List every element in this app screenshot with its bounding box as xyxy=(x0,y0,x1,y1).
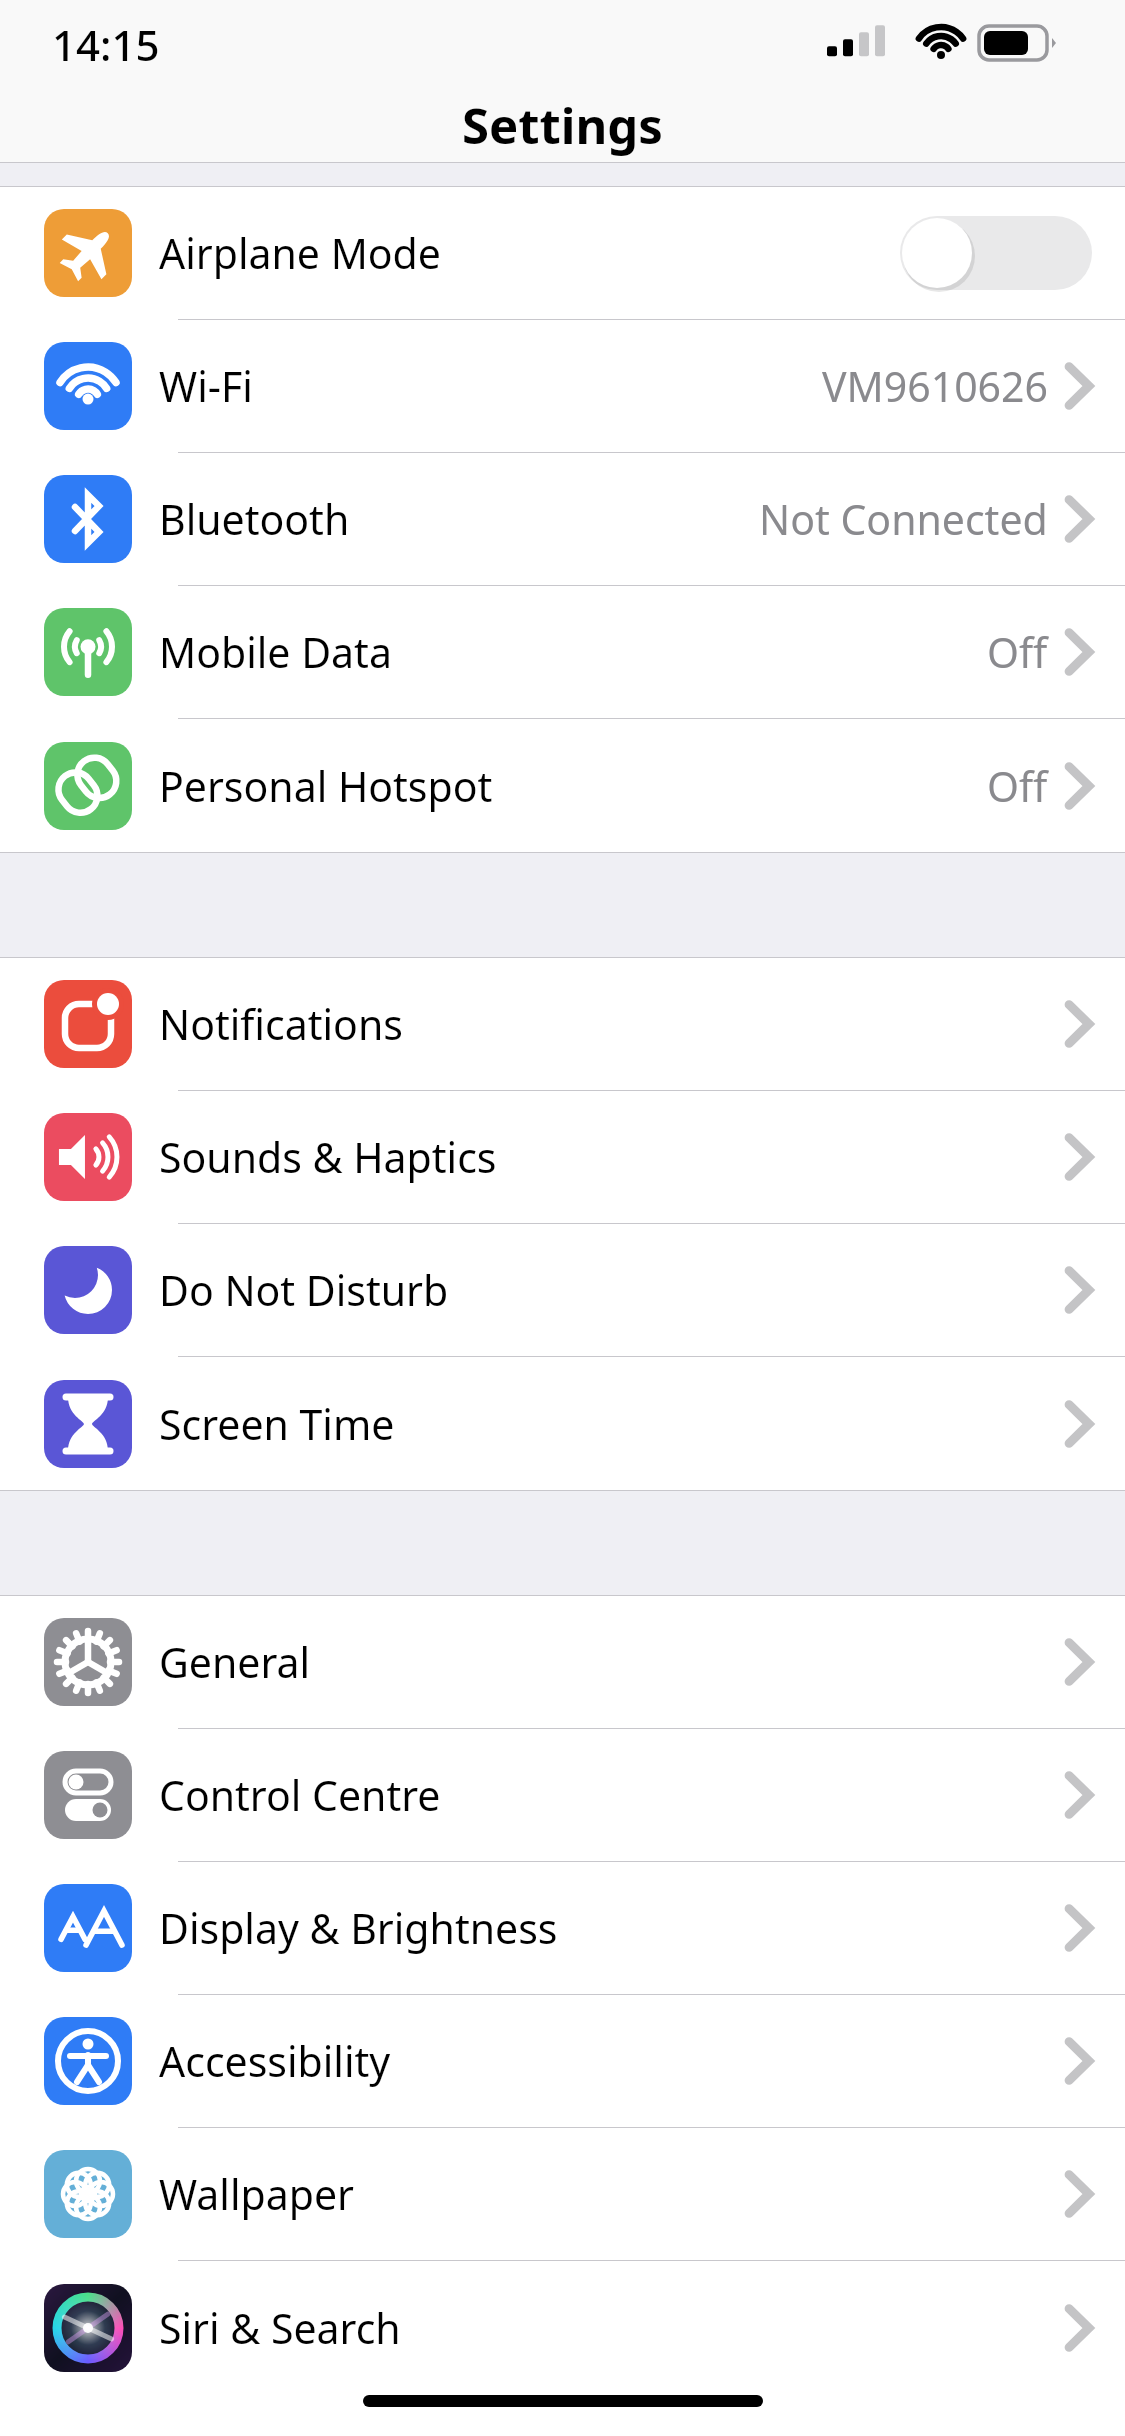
staticText: General xyxy=(159,1634,311,1690)
staticText: Siri & Search xyxy=(159,2300,401,2356)
button[interactable]: Personal Hotspot xyxy=(0,719,1125,852)
staticText: Sounds & Haptics xyxy=(159,1129,497,1185)
button[interactable]: Control Centre xyxy=(0,1729,1125,1862)
button[interactable]: Wi-Fi xyxy=(0,320,1125,453)
staticText: VM9610626 xyxy=(822,358,1048,414)
button[interactable]: Sounds & Haptics xyxy=(0,1091,1125,1224)
button[interactable]: Wallpaper xyxy=(0,2128,1125,2261)
staticText: Mobile Data xyxy=(159,624,392,680)
staticText: Control Centre xyxy=(159,1767,441,1823)
button[interactable]: Do Not Disturb xyxy=(0,1224,1125,1357)
staticText: 14:15 xyxy=(52,16,160,73)
button[interactable]: Screen Time xyxy=(0,1357,1125,1490)
staticText: Wallpaper xyxy=(159,2166,354,2222)
staticText: Notifications xyxy=(159,996,403,1052)
staticText: Bluetooth xyxy=(159,491,350,547)
staticText: Display & Brightness xyxy=(159,1900,558,1956)
staticText: Off xyxy=(987,624,1048,680)
staticText: Airplane Mode xyxy=(159,225,441,281)
staticText: Personal Hotspot xyxy=(159,758,493,814)
button[interactable]: Notifications xyxy=(0,958,1125,1091)
staticText: Settings xyxy=(462,92,663,159)
staticText: Not Connected xyxy=(759,491,1048,547)
button[interactable]: Airplane Mode xyxy=(0,187,1125,320)
staticText: Off xyxy=(987,758,1048,814)
staticText: Screen Time xyxy=(159,1396,395,1452)
staticText: Accessibility xyxy=(159,2033,391,2089)
staticText: Do Not Disturb xyxy=(159,1262,449,1318)
button[interactable]: General xyxy=(0,1596,1125,1729)
button[interactable]: Display & Brightness xyxy=(0,1862,1125,1995)
button[interactable]: Bluetooth xyxy=(0,453,1125,586)
button[interactable]: Siri & Search xyxy=(0,2261,1125,2394)
button[interactable]: Accessibility xyxy=(0,1995,1125,2128)
staticText: Wi-Fi xyxy=(159,358,253,414)
button[interactable]: Mobile Data xyxy=(0,586,1125,719)
